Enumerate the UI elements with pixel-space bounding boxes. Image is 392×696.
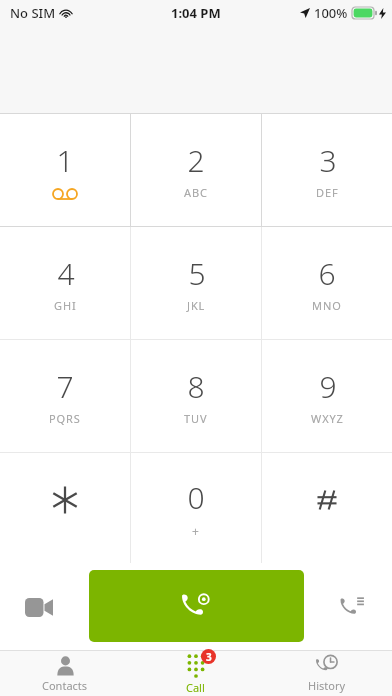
staticText: 6 [318,253,336,294]
button[interactable]: Call [89,570,304,642]
staticText: GHI [54,298,77,313]
button[interactable]: 3 [262,114,392,226]
staticText: + [192,523,200,539]
button[interactable]: 6 [262,227,392,339]
staticText: 3 [206,650,212,664]
staticText: 1 [56,140,74,181]
staticText: 7 [56,366,74,407]
staticText: 2 [187,140,205,181]
staticText: Call [186,680,205,695]
staticText: 4 [57,253,75,294]
button[interactable]: 4 [0,227,130,339]
staticText: No SIM [10,4,56,22]
button[interactable]: 0 [131,453,261,563]
staticText: JKL [187,298,206,313]
staticText: 0 [187,477,205,518]
button[interactable]: 8 [131,340,261,452]
button[interactable]: 3 [130,651,261,696]
button[interactable]: Contacts [0,651,130,696]
button[interactable] [262,453,392,563]
button[interactable]: 1 [0,114,130,226]
button[interactable]: Video call [10,578,68,636]
staticText: MNO [312,298,342,313]
staticText: TUV [184,411,208,426]
staticText: WXYZ [311,411,344,426]
button[interactable]: 7 [0,340,130,452]
button[interactable]: 5 [131,227,261,339]
staticText: DEF [316,185,339,200]
staticText: 1:04 PM [171,4,221,22]
staticText: ABC [184,185,208,200]
staticText: 8 [187,366,205,407]
staticText: 100% [314,4,348,22]
staticText: 3 [319,140,337,181]
staticText: History [308,678,346,693]
staticText: PQRS [49,411,81,426]
button[interactable]: 2 [131,114,261,226]
button[interactable]: 9 [262,340,392,452]
button[interactable]: History [261,651,392,696]
staticText: 5 [188,253,206,294]
button[interactable] [0,453,130,563]
staticText: 9 [319,366,337,407]
button[interactable]: Call log [324,578,382,636]
staticText: Contacts [42,678,88,693]
